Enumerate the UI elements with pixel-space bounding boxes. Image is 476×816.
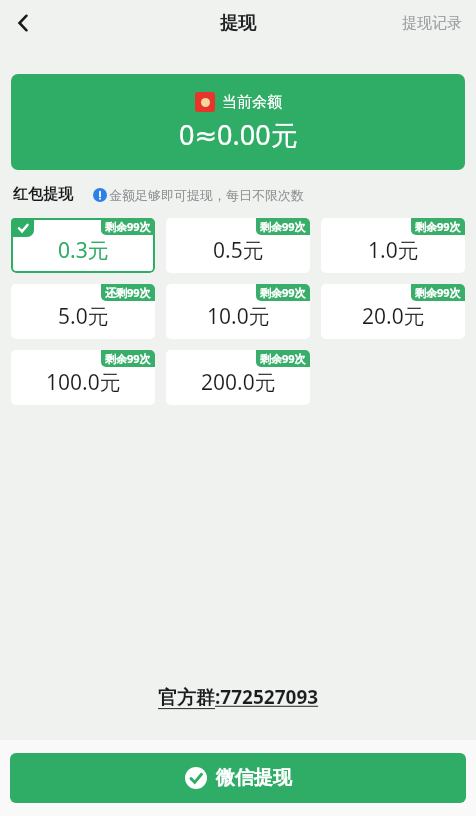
button[interactable]: Back (0, 0, 46, 46)
staticText: 提现记录 (402, 14, 462, 33)
staticText: 微信提现 (216, 766, 292, 790)
button[interactable]: 剩余99次 (166, 218, 310, 273)
staticText: 剩余99次 (415, 285, 461, 300)
staticText: 20.0元 (362, 302, 425, 331)
staticText: 100.0元 (46, 368, 121, 397)
staticText: 剩余99次 (260, 219, 306, 234)
staticText: 0.3元 (58, 236, 109, 265)
button[interactable]: 剩余99次 (321, 218, 465, 273)
staticText: 剩余99次 (260, 351, 306, 366)
button[interactable]: 官方群:772527093 (152, 678, 325, 716)
staticText: 剩余99次 (415, 219, 461, 234)
button[interactable]: 剩余99次 (321, 284, 465, 339)
staticText: 0≈0.00元 (179, 116, 298, 153)
staticText: 剩余99次 (260, 285, 306, 300)
staticText: 还剩99次 (105, 285, 151, 300)
staticText: 0.5元 (213, 236, 264, 265)
button[interactable]: 当前余额 (11, 74, 465, 170)
staticText: 当前余额 (222, 93, 282, 112)
staticText: 剩余99次 (105, 351, 151, 366)
button[interactable]: 剩余99次 (11, 350, 155, 405)
staticText: 剩余99次 (105, 219, 151, 234)
staticText: 5.0元 (58, 302, 109, 331)
button[interactable]: 剩余99次 (166, 284, 310, 339)
staticText: 200.0元 (201, 368, 276, 397)
staticText: 10.0元 (207, 302, 270, 331)
button[interactable]: 微信提现 (10, 753, 466, 803)
staticText: 提现 (220, 12, 256, 35)
button[interactable]: 剩余99次 (166, 350, 310, 405)
staticText: 红包提现 (13, 185, 73, 204)
button[interactable]: 还剩99次 (11, 284, 155, 339)
staticText: 金额足够即可提现，每日不限次数 (109, 187, 304, 203)
button[interactable]: 剩余99次 (11, 218, 155, 273)
button[interactable]: 提现记录 (388, 4, 476, 43)
staticText: 1.0元 (368, 236, 419, 265)
staticText: 官方群:772527093 (158, 684, 319, 710)
